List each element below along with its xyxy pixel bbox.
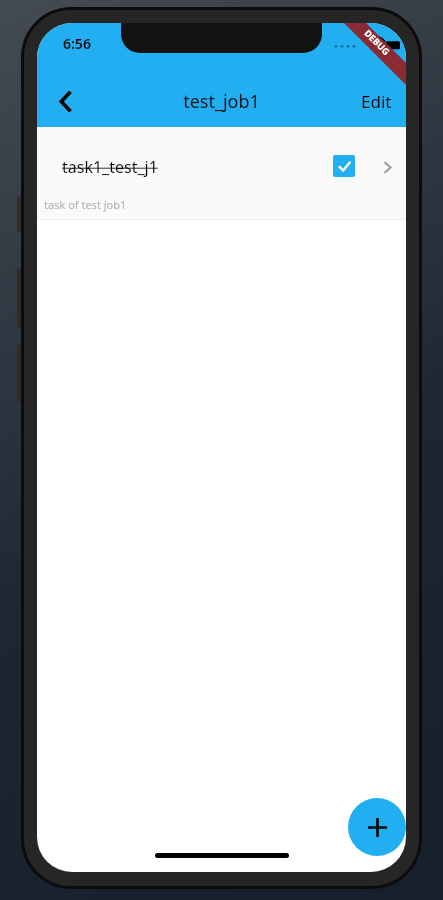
staticText: task of test job1 <box>44 197 127 212</box>
staticText: 6:56 <box>63 34 91 53</box>
staticText: Edit <box>361 90 392 113</box>
staticText: DEBUG <box>362 27 393 57</box>
button[interactable]: Add task <box>348 798 406 856</box>
button[interactable]: Task done checkbox <box>333 155 355 177</box>
button[interactable]: Edit <box>352 81 401 122</box>
staticText: test_job1 <box>183 89 260 114</box>
staticText: task1_test_j1 <box>62 156 158 178</box>
button[interactable]: Open task details <box>375 155 399 179</box>
button[interactable]: task1_test_j1 <box>37 127 406 219</box>
button[interactable]: Back <box>43 79 87 123</box>
